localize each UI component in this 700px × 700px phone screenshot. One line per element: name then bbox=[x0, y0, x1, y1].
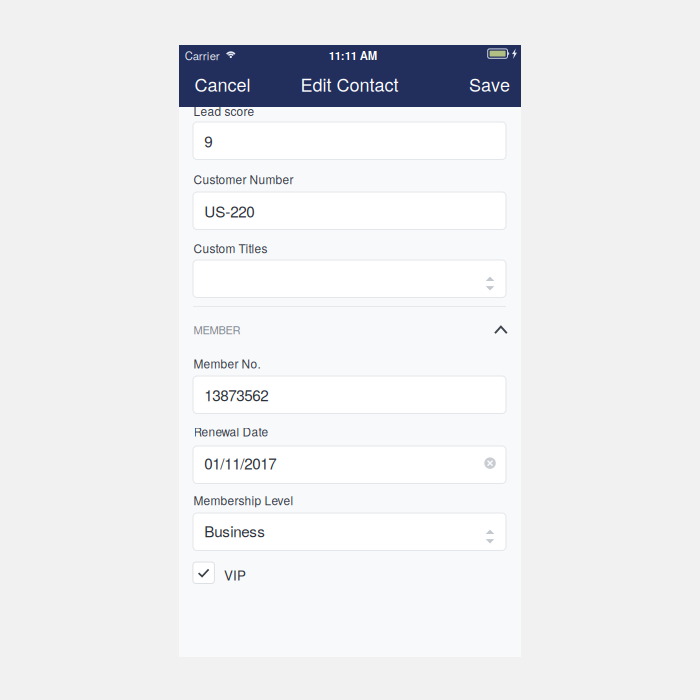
staticText: US-220 bbox=[204, 200, 254, 222]
staticText: 13873562 bbox=[204, 384, 268, 406]
staticText: Custom Titles bbox=[194, 240, 268, 257]
staticText: Member No. bbox=[194, 355, 261, 372]
staticText: Cancel bbox=[194, 71, 250, 97]
button[interactable]: Collapse Member section bbox=[463, 311, 507, 347]
staticText: Edit Contact bbox=[300, 71, 398, 97]
staticText: Renewal Date bbox=[194, 423, 269, 440]
staticText: Lead score bbox=[194, 102, 255, 119]
staticText: Membership Level bbox=[194, 492, 294, 509]
staticText: 01/11/2017 bbox=[204, 452, 276, 474]
staticText: Business bbox=[204, 520, 265, 542]
staticText: Carrier bbox=[185, 47, 220, 63]
button[interactable]: Cancel bbox=[180, 65, 252, 107]
staticText: Save bbox=[469, 71, 510, 97]
staticText: 11:11 AM bbox=[329, 47, 377, 63]
staticText: Customer Number bbox=[194, 171, 294, 188]
staticText: VIP bbox=[224, 565, 246, 584]
staticText: MEMBER bbox=[194, 321, 241, 337]
button[interactable]: Save bbox=[458, 65, 520, 107]
staticText: 9 bbox=[204, 130, 212, 152]
button[interactable]: VIP bbox=[193, 561, 273, 585]
